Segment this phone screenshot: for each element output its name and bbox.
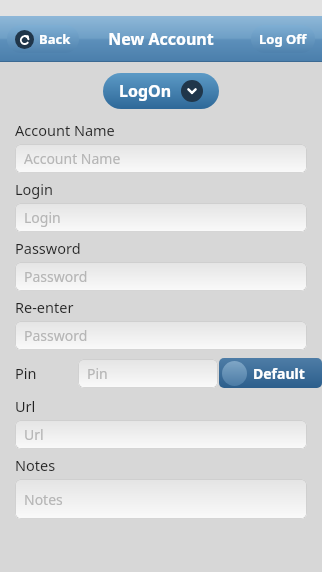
- button[interactable]: Password: [15, 321, 307, 350]
- staticText: Login: [15, 179, 53, 199]
- staticText: New Account: [108, 28, 214, 50]
- staticText: Account Name: [24, 149, 121, 168]
- button[interactable]: Log Off: [251, 25, 315, 53]
- staticText: Account Name: [15, 120, 115, 140]
- button[interactable]: Pin: [78, 359, 218, 388]
- staticText: Log Off: [259, 30, 307, 48]
- staticText: Pin: [87, 364, 108, 383]
- button[interactable]: Login: [15, 203, 307, 232]
- staticText: Password: [15, 238, 81, 258]
- button[interactable]: Notes: [15, 479, 307, 519]
- button[interactable]: LogOn: [103, 73, 219, 109]
- button[interactable]: Back: [7, 25, 79, 53]
- button[interactable]: Account Name: [15, 144, 307, 173]
- staticText: Password: [24, 326, 88, 345]
- staticText: Notes: [24, 490, 63, 509]
- staticText: Default: [253, 364, 305, 383]
- button[interactable]: Default: [219, 358, 322, 388]
- staticText: Pin: [15, 363, 37, 383]
- staticText: Login: [24, 208, 61, 227]
- staticText: LogOn: [119, 80, 172, 102]
- button[interactable]: Password: [15, 262, 307, 291]
- staticText: Re-enter: [15, 297, 74, 317]
- staticText: Url: [15, 396, 36, 416]
- staticText: Back: [39, 30, 71, 48]
- staticText: Password: [24, 267, 88, 286]
- staticText: Url: [24, 425, 44, 444]
- staticText: Notes: [15, 455, 56, 475]
- button[interactable]: Url: [15, 420, 307, 449]
